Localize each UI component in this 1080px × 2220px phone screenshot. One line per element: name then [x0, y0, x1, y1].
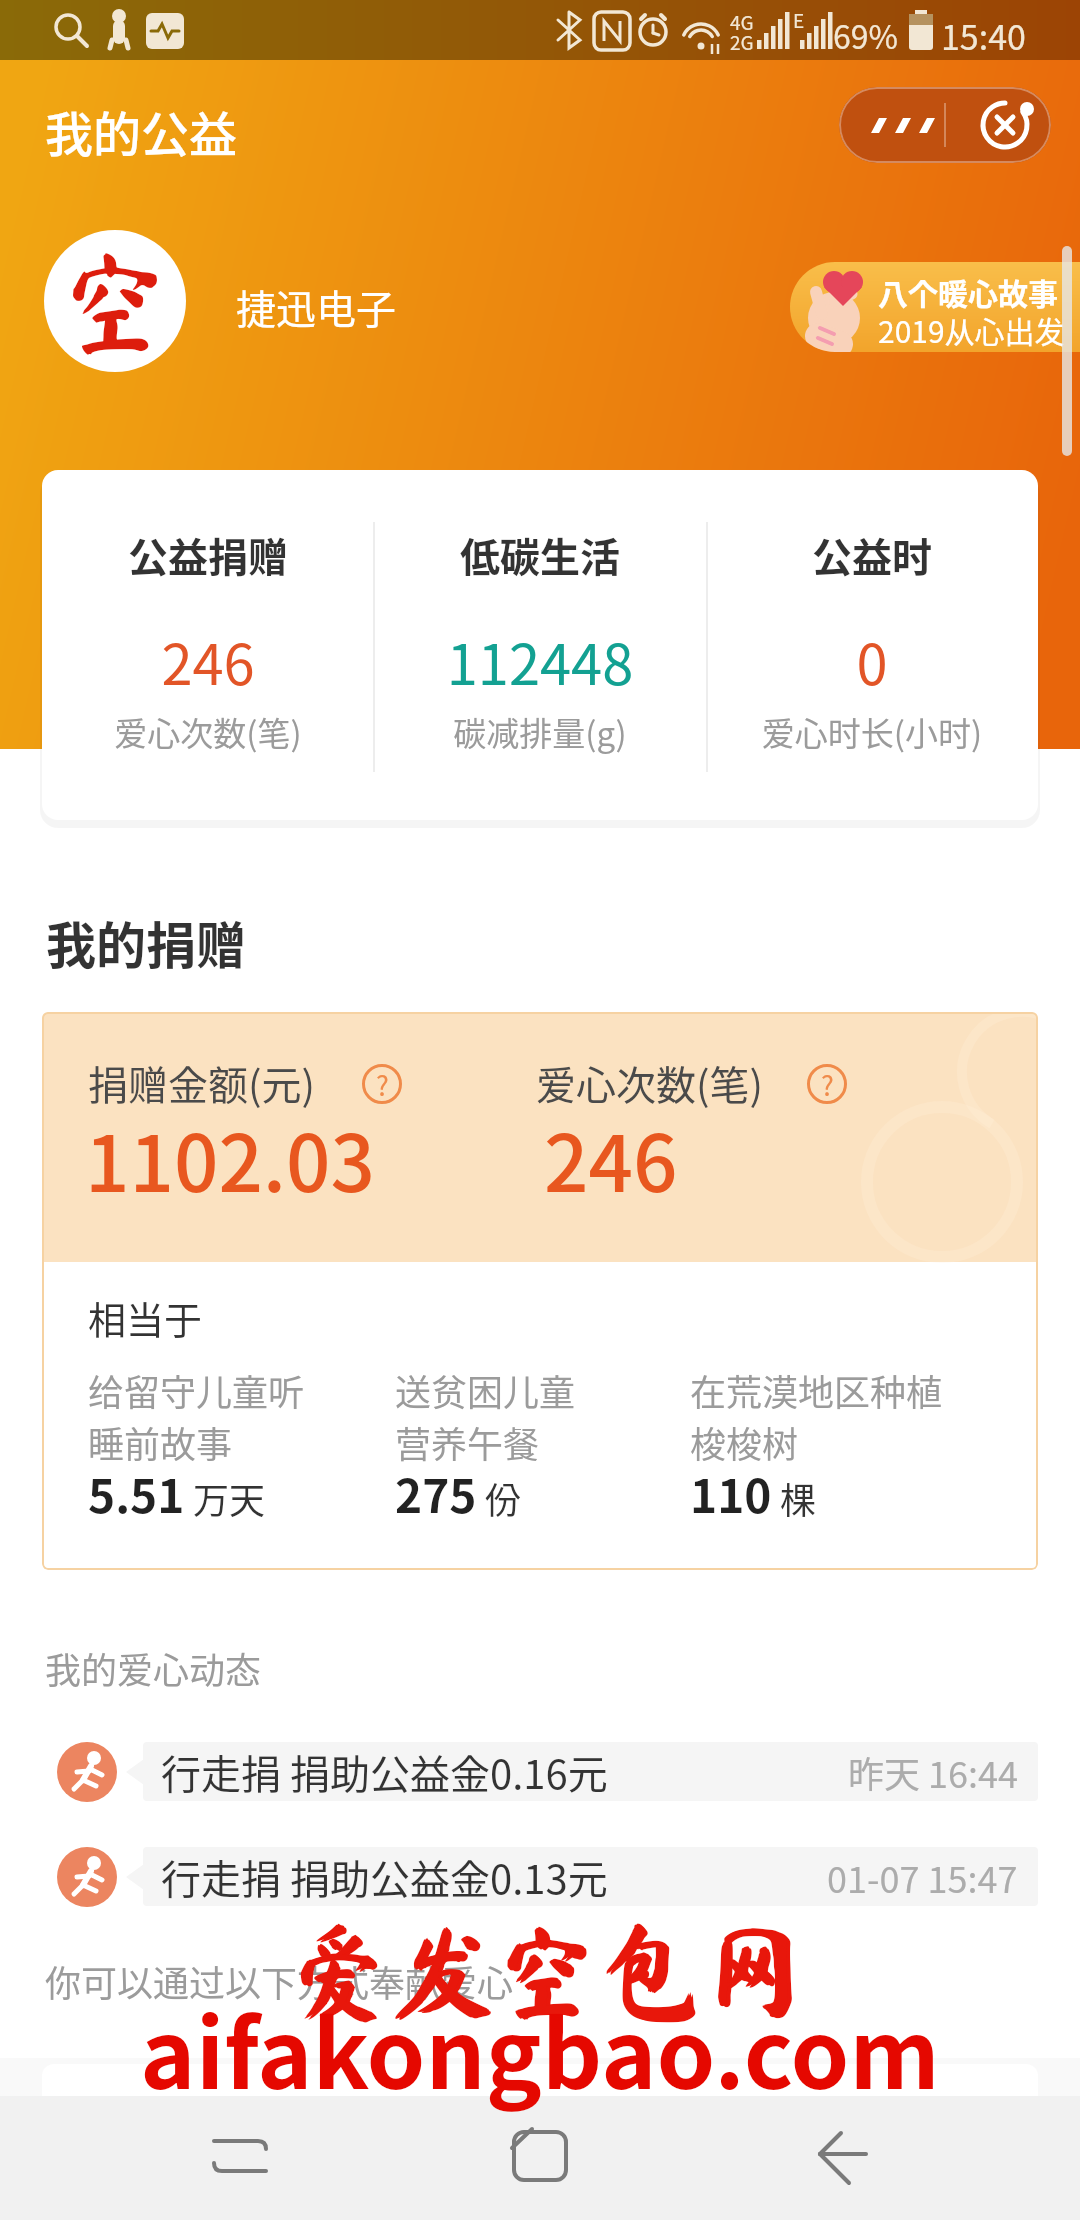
- staticText: 相当于: [88, 1290, 203, 1345]
- staticText: 睡前故事: [88, 1416, 233, 1468]
- staticText: 你可以通过以下方式奉献爱心: [45, 1955, 514, 2007]
- staticText: 行走捐 捐助公益金0.13元: [161, 1848, 608, 1906]
- staticText: 01-07 15:47: [827, 1851, 1018, 1903]
- staticText: 246: [42, 620, 374, 701]
- button[interactable]: 行走捐 捐助公益金0.13元: [143, 1847, 1038, 1906]
- staticText: 梭梭树: [690, 1416, 799, 1468]
- staticText: 空: [57, 243, 173, 359]
- staticText: 我的捐赠: [46, 906, 246, 978]
- staticText: aifakongbao.com: [0, 1980, 1080, 2116]
- staticText: 我的爱心动态: [45, 1642, 262, 1694]
- staticText: 爱发空包网: [289, 1919, 810, 2023]
- staticText: 行走捐 捐助公益金0.16元: [161, 1743, 608, 1801]
- button[interactable]: 公益时: [706, 470, 1038, 820]
- staticText: 0: [706, 620, 1038, 701]
- button[interactable]: [839, 87, 945, 163]
- staticText: 碳减排量(g): [374, 708, 706, 756]
- staticText: 棵: [780, 1472, 817, 1524]
- staticText: 公益时: [706, 526, 1038, 584]
- staticText: 送贫困儿童: [395, 1364, 576, 1416]
- button[interactable]: [465, 2110, 615, 2205]
- staticText: 爱发空包网: [285, 1918, 806, 2022]
- staticText: 2G: [730, 28, 754, 56]
- staticText: 275: [395, 1460, 477, 1527]
- button[interactable]: [945, 87, 1051, 163]
- button[interactable]: 八个暖心故事: [790, 262, 1080, 352]
- staticText: 在荒漠地区种植: [690, 1364, 943, 1416]
- staticText: 246: [544, 1102, 678, 1215]
- staticText: ?: [821, 1065, 834, 1104]
- staticText: 5.51: [88, 1460, 185, 1527]
- staticText: 112448: [374, 620, 706, 701]
- staticText: 万天: [193, 1472, 266, 1524]
- staticText: 110: [690, 1460, 772, 1527]
- staticText: 昨天 16:44: [848, 1746, 1018, 1798]
- staticText: 15:40: [941, 11, 1026, 60]
- button[interactable]: [770, 2110, 920, 2205]
- staticText: 低碳生活: [374, 526, 706, 584]
- staticText: 2019从心出发: [878, 308, 1065, 351]
- staticText: 八个暖心故事: [878, 270, 1058, 313]
- staticText: 69%: [833, 12, 898, 58]
- staticText: 份: [485, 1472, 522, 1524]
- staticText: E: [793, 6, 805, 34]
- staticText: 公益捐赠: [42, 526, 374, 584]
- button[interactable]: 低碳生活: [374, 470, 706, 820]
- staticText: 爱心次数(笔): [42, 708, 374, 756]
- staticText: 营养午餐: [395, 1416, 540, 1468]
- staticText: 给留守儿童听: [88, 1364, 305, 1416]
- button[interactable]: 空: [44, 230, 186, 372]
- button[interactable]: [165, 2110, 315, 2205]
- staticText: 爱心次数(笔): [536, 1054, 764, 1112]
- staticText: 爱发空包网: [287, 1917, 808, 2021]
- button[interactable]: 公益捐赠: [42, 470, 374, 820]
- staticText: 爱心时长(小时): [706, 708, 1038, 756]
- staticText: 捐赠金额(元): [88, 1054, 316, 1112]
- button[interactable]: ?: [807, 1064, 847, 1104]
- staticText: ?: [376, 1065, 389, 1104]
- staticText: 1102.03: [85, 1102, 376, 1215]
- staticText: 捷迅电子: [236, 278, 396, 336]
- button[interactable]: 行走捐 捐助公益金0.16元: [143, 1742, 1038, 1801]
- button[interactable]: ?: [362, 1064, 402, 1104]
- staticText: 我的公益: [45, 96, 238, 166]
- staticText: 4G: [730, 8, 754, 36]
